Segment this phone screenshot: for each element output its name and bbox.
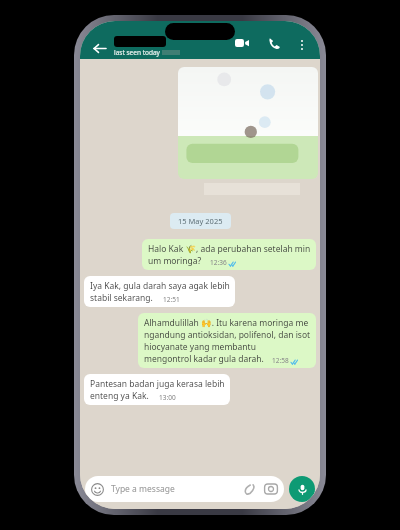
button[interactable]: Voice message (289, 476, 315, 502)
staticText: ngandung antioksidan, polifenol, dan iso… (144, 329, 311, 341)
button[interactable]: Alhamdulillah 🙌. Itu karena moringa me (138, 313, 316, 368)
button[interactable]: Pantesan badan juga kerasa lebih (84, 374, 230, 405)
staticText: enteng ya Kak. (90, 390, 149, 402)
staticText: mengontrol kadar gula darah. (144, 353, 264, 365)
staticText: 15 May 2025 (178, 216, 223, 226)
staticText: Halo Kak 🌾, ada perubahan setelah min (148, 243, 311, 255)
button[interactable]: Video call (230, 35, 254, 51)
staticText: 12:58 (272, 356, 289, 365)
staticText: Type a message (111, 483, 175, 495)
button[interactable]: Camera (264, 482, 278, 496)
staticText: stabil sekarang. (90, 292, 153, 304)
button[interactable]: Attach (243, 482, 257, 496)
staticText: um moringa? (148, 255, 202, 267)
other: Emoji (91, 483, 104, 496)
staticText: 13:00 (159, 393, 176, 402)
staticText: Iya Kak, gula darah saya agak lebih (90, 280, 230, 292)
staticText: Pantesan badan juga kerasa lebih (90, 378, 225, 390)
button[interactable]: Back (88, 37, 110, 59)
staticText: hiocyanate yang membantu (144, 341, 256, 353)
staticText: 12:51 (163, 295, 180, 304)
button[interactable]: Call (262, 35, 286, 51)
staticText: 12:36 (210, 258, 227, 267)
button[interactable]: More options (292, 39, 312, 51)
button[interactable]: Photo (178, 67, 318, 179)
button[interactable]: Halo Kak 🌾, ada perubahan setelah min (142, 239, 316, 270)
staticText: Alhamdulillah 🙌. Itu karena moringa me (144, 317, 309, 329)
staticText: last seen today (114, 48, 160, 57)
button[interactable]: Emoji (85, 476, 284, 502)
button[interactable]: Iya Kak, gula darah saya agak lebih (84, 276, 235, 307)
